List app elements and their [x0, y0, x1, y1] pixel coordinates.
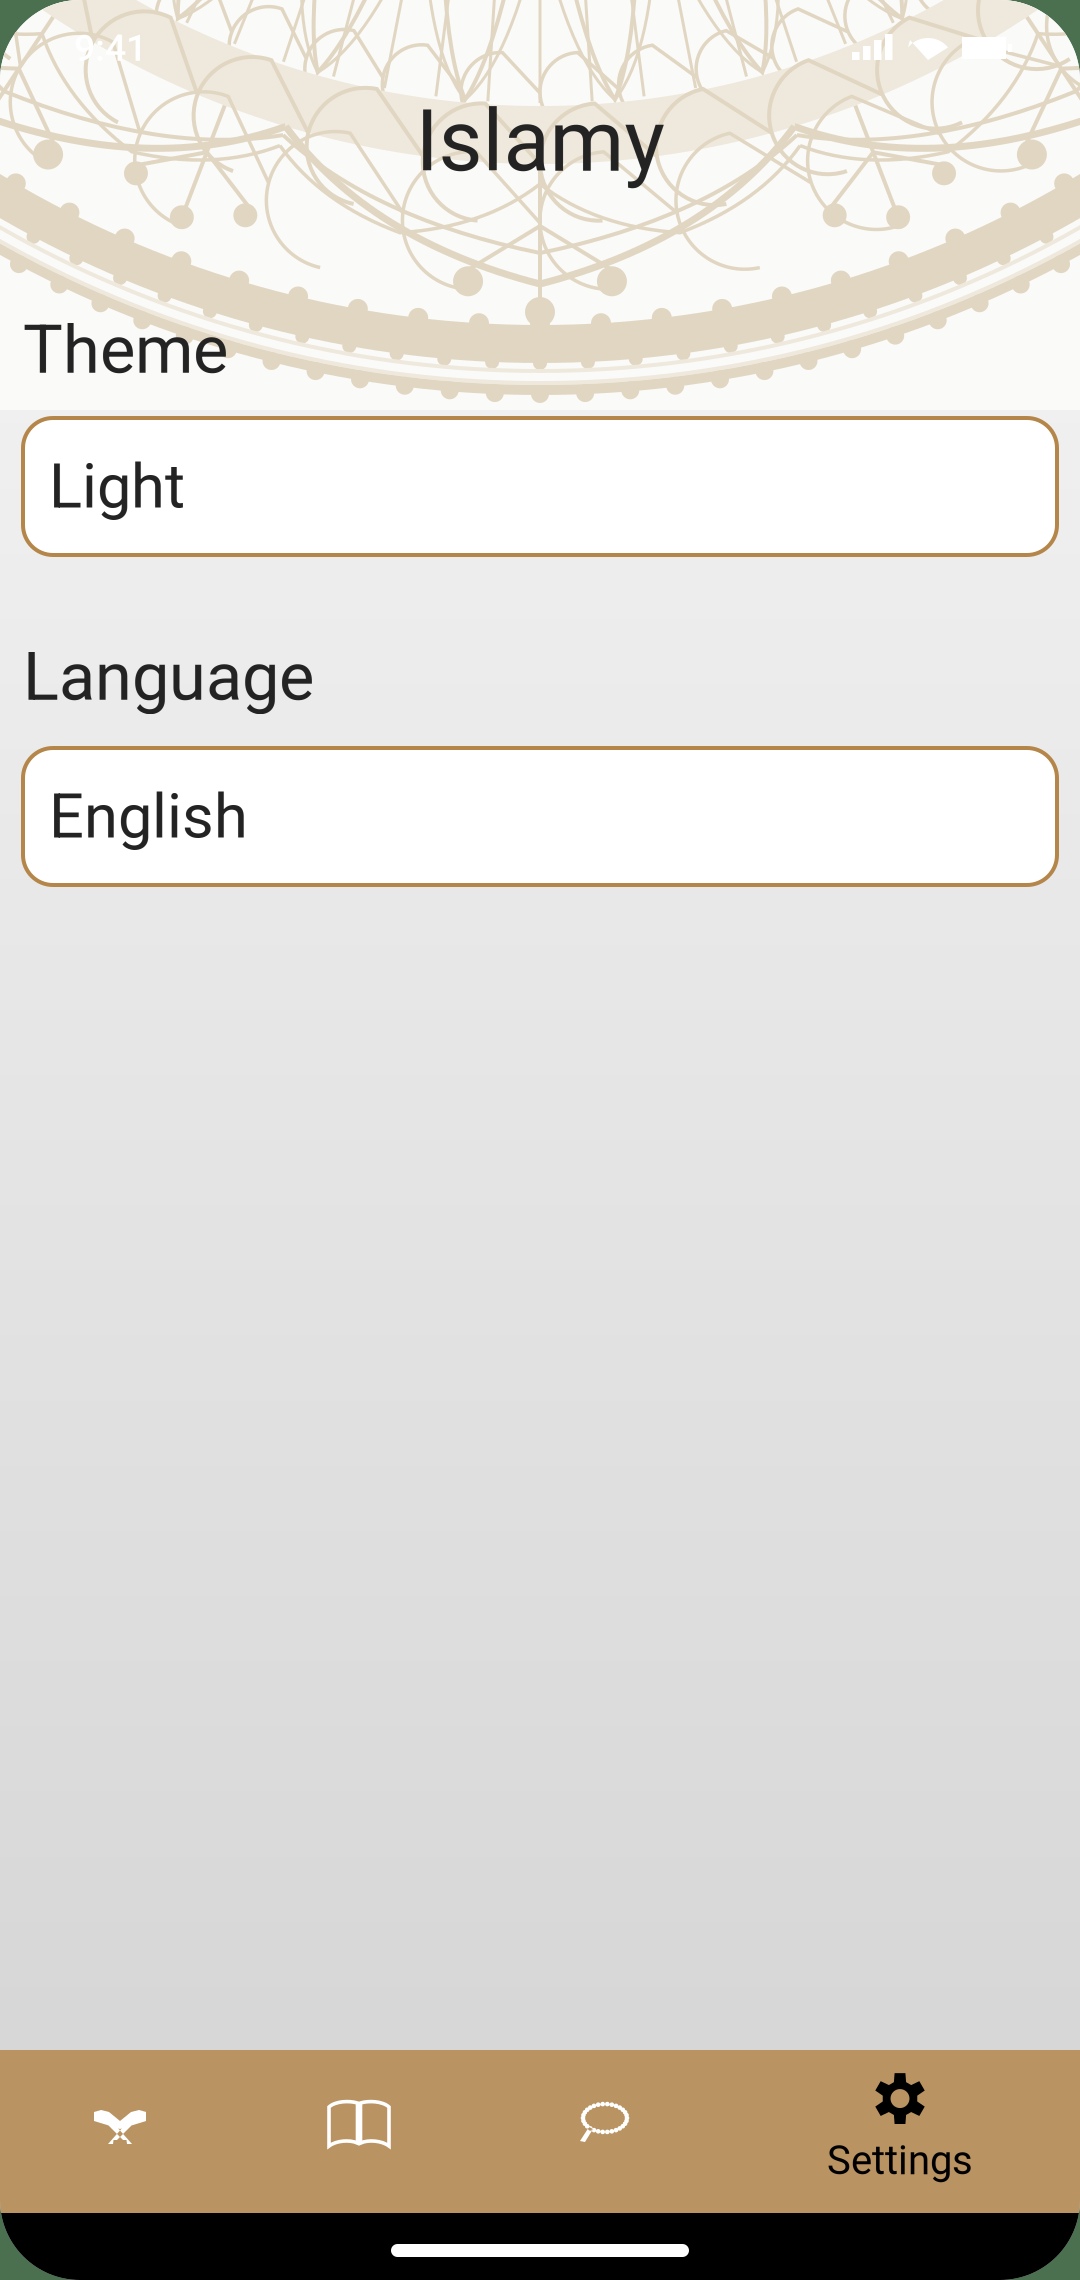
staticText: 9:41	[74, 26, 147, 70]
staticText: Theme	[23, 311, 228, 389]
staticText: Settings	[827, 2137, 973, 2184]
staticText: Language	[23, 638, 314, 716]
staticText: Islamy	[415, 91, 664, 191]
button[interactable]: English	[23, 748, 1057, 885]
button[interactable]: Azkar	[240, 2050, 480, 2213]
staticText: English	[49, 781, 248, 852]
button[interactable]: Tasbih	[480, 2050, 730, 2213]
button[interactable]: Settings	[730, 2050, 1080, 2213]
button[interactable]: Quran	[0, 2050, 240, 2213]
staticText: Light	[49, 451, 185, 522]
button[interactable]: Light	[23, 418, 1057, 555]
